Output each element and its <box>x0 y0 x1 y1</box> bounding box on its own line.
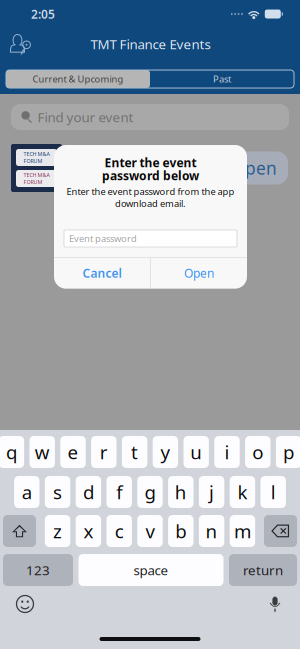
button[interactable]: Dictation <box>258 592 292 616</box>
button[interactable]: v <box>137 515 163 547</box>
staticText: a <box>22 480 32 504</box>
staticText: k <box>237 480 247 504</box>
button[interactable]: o <box>245 436 270 468</box>
button[interactable]: space <box>78 554 223 586</box>
button[interactable]: q <box>0 436 24 468</box>
button[interactable]: Open <box>151 258 247 289</box>
button[interactable]: y <box>153 436 178 468</box>
staticText: u <box>190 440 202 464</box>
button[interactable]: Current & Upcoming <box>6 70 150 88</box>
staticText: TMT Finance Events <box>90 35 210 53</box>
staticText: password below <box>102 167 199 183</box>
staticText: Open <box>184 265 214 281</box>
button[interactable]: a <box>14 476 39 508</box>
button[interactable]: i <box>214 436 240 468</box>
staticText: l <box>271 480 276 504</box>
staticText: 123 <box>26 561 50 579</box>
staticText: TECH M&A FORUM <box>23 171 49 186</box>
staticText: d <box>83 480 94 504</box>
staticText: Past <box>213 73 231 85</box>
staticText: Cancel <box>83 265 122 281</box>
staticText: r <box>100 440 108 464</box>
button[interactable]: b <box>168 515 193 547</box>
button[interactable]: 123 <box>3 554 73 586</box>
button[interactable]: p <box>276 436 300 468</box>
staticText: TECH M&A FORUM <box>23 150 49 165</box>
button[interactable]: x <box>76 515 101 547</box>
staticText: Open <box>231 156 277 179</box>
staticText: j <box>209 480 214 504</box>
button[interactable]: Emoji <box>8 592 42 616</box>
staticText: return <box>243 561 283 579</box>
staticText: g <box>144 480 155 504</box>
staticText: Find your event <box>37 108 133 126</box>
button[interactable]: r <box>91 436 116 468</box>
staticText: 2:05 <box>31 6 55 22</box>
button[interactable]: l <box>260 476 286 508</box>
staticText: Enter the event password from the app <box>66 185 234 198</box>
staticText: download email. <box>115 197 186 210</box>
staticText: n <box>206 519 218 543</box>
staticText: c <box>115 519 124 543</box>
button[interactable]: z <box>45 515 70 547</box>
button[interactable]: c <box>106 515 132 547</box>
button[interactable]: Delete <box>264 515 297 547</box>
button[interactable]: j <box>199 476 224 508</box>
button[interactable]: s <box>45 476 70 508</box>
button[interactable]: Shift <box>3 515 36 547</box>
staticText: Current & Upcoming <box>32 73 123 85</box>
staticText: p <box>283 440 294 464</box>
button[interactable]: Account <box>0 30 43 58</box>
staticText: b <box>175 519 186 543</box>
button[interactable]: d <box>76 476 101 508</box>
button[interactable]: f <box>106 476 132 508</box>
button[interactable]: Open <box>220 151 288 184</box>
staticText: o <box>252 440 263 464</box>
button[interactable]: k <box>230 476 255 508</box>
staticText: s <box>53 480 62 504</box>
staticText: m <box>234 519 251 543</box>
button[interactable]: m <box>230 515 255 547</box>
staticText: Event password <box>69 232 137 245</box>
button[interactable]: w <box>29 436 55 468</box>
staticText: y <box>160 440 170 464</box>
button[interactable]: h <box>168 476 193 508</box>
button[interactable]: return <box>229 554 297 586</box>
button[interactable]: t <box>122 436 147 468</box>
button[interactable]: g <box>137 476 163 508</box>
staticText: z <box>53 519 62 543</box>
staticText: e <box>67 440 78 464</box>
staticText: h <box>175 480 187 504</box>
button[interactable]: Cancel <box>54 258 150 289</box>
staticText: x <box>83 519 93 543</box>
button[interactable]: e <box>60 436 86 468</box>
staticText: Enter the event <box>104 154 196 170</box>
staticText: f <box>116 480 122 504</box>
button[interactable]: u <box>183 436 209 468</box>
staticText: t <box>131 440 138 464</box>
button[interactable]: n <box>199 515 224 547</box>
staticText: w <box>35 440 50 464</box>
staticText: i <box>224 440 229 464</box>
staticText: q <box>6 440 17 464</box>
button[interactable]: Past <box>150 70 294 88</box>
staticText: v <box>145 519 154 543</box>
staticText: space <box>133 561 168 579</box>
